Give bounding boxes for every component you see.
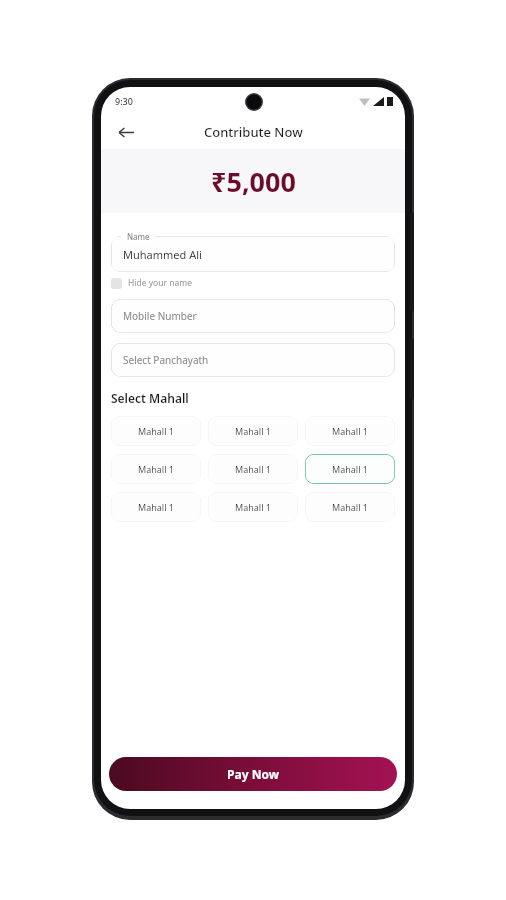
staticText: Contribute Now bbox=[204, 123, 303, 141]
staticText: Mahall 1 bbox=[235, 501, 271, 513]
staticText: Mahall 1 bbox=[235, 425, 271, 437]
button[interactable]: Pay Now bbox=[109, 757, 397, 791]
staticText: Mobile Number bbox=[123, 309, 197, 323]
button[interactable]: Back bbox=[113, 119, 139, 145]
button[interactable]: Mahall 1 bbox=[111, 454, 201, 484]
button[interactable]: Hide your name bbox=[111, 277, 192, 289]
staticText: Mahall 1 bbox=[332, 463, 368, 475]
button[interactable]: Mahall 1 bbox=[208, 416, 298, 446]
staticText: Name bbox=[127, 231, 150, 242]
staticText: Mahall 1 bbox=[138, 463, 174, 475]
button[interactable]: Muhammed Ali bbox=[111, 236, 395, 272]
staticText: 9:30 bbox=[115, 95, 133, 107]
button[interactable]: Mahall 1 bbox=[305, 454, 395, 484]
staticText: Mahall 1 bbox=[138, 425, 174, 437]
button[interactable]: Mahall 1 bbox=[111, 416, 201, 446]
button[interactable]: Mahall 1 bbox=[305, 492, 395, 522]
staticText: Pay Now bbox=[227, 766, 279, 782]
button[interactable]: Mahall 1 bbox=[111, 492, 201, 522]
staticText: ₹5,000 bbox=[211, 163, 296, 200]
staticText: Hide your name bbox=[128, 277, 192, 289]
staticText: Muhammed Ali bbox=[123, 247, 202, 262]
staticText: Mahall 1 bbox=[332, 501, 368, 513]
staticText: Mahall 1 bbox=[138, 501, 174, 513]
button[interactable]: Mahall 1 bbox=[208, 454, 298, 484]
button[interactable]: Mahall 1 bbox=[305, 416, 395, 446]
button[interactable]: Mobile Number bbox=[111, 299, 395, 333]
staticText: Mahall 1 bbox=[332, 425, 368, 437]
staticText: Mahall 1 bbox=[235, 463, 271, 475]
button[interactable]: Mahall 1 bbox=[208, 492, 298, 522]
staticText: Select Mahall bbox=[111, 390, 189, 406]
button[interactable]: Select Panchayath bbox=[111, 343, 395, 377]
staticText: Select Panchayath bbox=[123, 353, 209, 367]
